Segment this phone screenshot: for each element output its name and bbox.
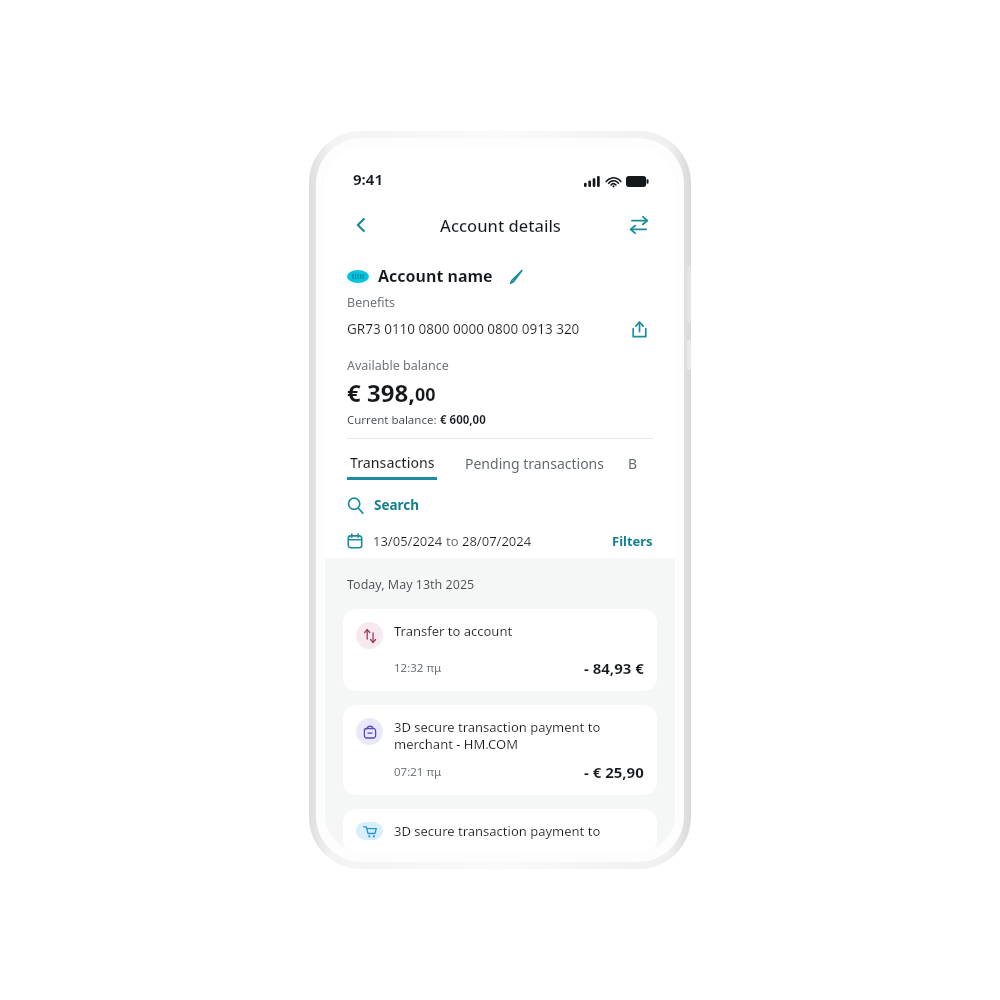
staticText: Transactions	[350, 453, 435, 472]
button[interactable]: Edit account name	[503, 263, 529, 289]
staticText: Available balance	[347, 357, 449, 374]
button[interactable]: Transfer to account	[343, 609, 657, 691]
button[interactable]: Back	[341, 205, 381, 245]
staticText: Search	[374, 496, 420, 514]
staticText: 3D secure transaction payment to merchan…	[394, 718, 601, 753]
button[interactable]: B	[628, 440, 638, 480]
staticText: Filters	[612, 532, 653, 550]
staticText: 3D secure transaction payment to merchan…	[394, 822, 601, 840]
staticText: € 600,00	[440, 412, 486, 428]
button[interactable]: Pending transactions	[465, 440, 604, 480]
staticText: € 398,	[347, 376, 415, 409]
staticText: 07:21 πμ	[394, 764, 442, 780]
staticText: 13/05/2024	[373, 532, 446, 550]
button[interactable]: Transactions	[347, 439, 437, 480]
staticText: Transfer to account	[394, 622, 513, 640]
staticText: 00	[415, 382, 436, 407]
staticText: to	[446, 532, 462, 550]
button[interactable]: Share IBAN	[625, 315, 653, 343]
button[interactable]: 13/05/2024	[347, 532, 532, 550]
staticText: 12:32 πμ	[394, 660, 442, 676]
staticText: B	[628, 454, 638, 473]
staticText: Today, May 13th 2025	[347, 576, 475, 593]
staticText: Account name	[378, 265, 493, 287]
staticText: Account details	[440, 214, 561, 236]
staticText: Pending transactions	[465, 454, 604, 473]
staticText: GR73 0110 0800 0000 0800 0913 320	[347, 320, 580, 338]
button[interactable]: 3D secure transaction payment to merchan…	[343, 809, 657, 853]
staticText: 28/07/2024	[462, 532, 532, 550]
staticText: Benefits	[347, 294, 395, 311]
button[interactable]: Search	[347, 496, 675, 514]
button[interactable]: Transfer	[619, 205, 659, 245]
staticText: Current balance:	[347, 412, 440, 428]
button[interactable]: 3D secure transaction payment to merchan…	[343, 705, 657, 795]
staticText: - € 25,90	[584, 762, 644, 782]
staticText: - 84,93 €	[584, 658, 644, 678]
button[interactable]: Filters	[612, 532, 653, 550]
staticText: 9:41	[353, 169, 383, 189]
